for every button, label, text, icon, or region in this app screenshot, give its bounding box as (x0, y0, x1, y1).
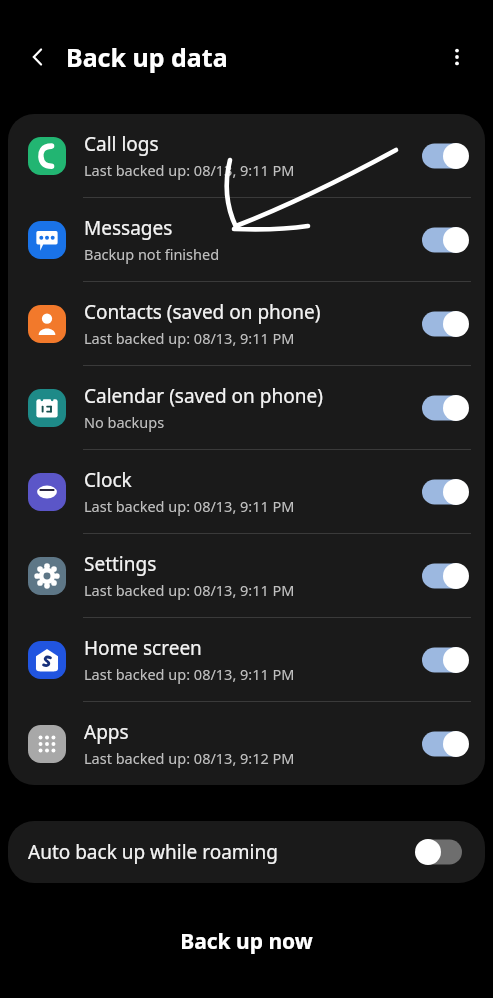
staticText: Last backed up: 08/13, 9:12 PM (84, 748, 295, 768)
button[interactable]: Clock (8, 450, 485, 533)
button[interactable]: Back (16, 35, 60, 79)
button[interactable]: Auto back up while roaming (8, 821, 485, 883)
button[interactable]: Call logs (8, 114, 485, 197)
button[interactable]: Contacts (saved on phone) (8, 282, 485, 365)
staticText: Last backed up: 08/13, 9:11 PM (84, 580, 295, 600)
button[interactable]: On (419, 727, 471, 761)
button[interactable]: On (419, 475, 471, 509)
button[interactable]: On (419, 139, 471, 173)
staticText: Last backed up: 08/13, 9:11 PM (84, 664, 295, 684)
button[interactable]: More options (435, 35, 479, 79)
staticText: Clock (84, 467, 132, 493)
button[interactable]: On (419, 643, 471, 677)
staticText: Apps (84, 719, 129, 745)
staticText: Back up now (180, 927, 313, 956)
button[interactable]: Settings (8, 534, 485, 617)
staticText: Calendar (saved on phone) (84, 383, 323, 409)
button[interactable]: Calendar (saved on phone) (8, 366, 485, 449)
staticText: Last backed up: 08/13, 9:11 PM (84, 160, 295, 180)
button[interactable]: On (419, 391, 471, 425)
button[interactable]: On (419, 223, 471, 257)
staticText: Back up data (66, 40, 228, 74)
staticText: Settings (84, 551, 157, 577)
staticText: Messages (84, 215, 173, 241)
button[interactable]: On (419, 559, 471, 593)
staticText: Call logs (84, 131, 159, 157)
button[interactable]: Apps (8, 702, 485, 785)
staticText: Last backed up: 08/13, 9:11 PM (84, 496, 295, 516)
staticText: Last backed up: 08/13, 9:11 PM (84, 328, 295, 348)
button[interactable]: Off (413, 835, 465, 869)
button[interactable]: On (419, 307, 471, 341)
staticText: Contacts (saved on phone) (84, 299, 321, 325)
staticText: Auto back up while roaming (28, 839, 413, 865)
staticText: Backup not finished (84, 244, 220, 264)
button[interactable]: Back up now (0, 906, 493, 976)
staticText: Home screen (84, 635, 202, 661)
button[interactable]: Messages (8, 198, 485, 281)
staticText: No backups (84, 412, 165, 432)
button[interactable]: Home screen (8, 618, 485, 701)
